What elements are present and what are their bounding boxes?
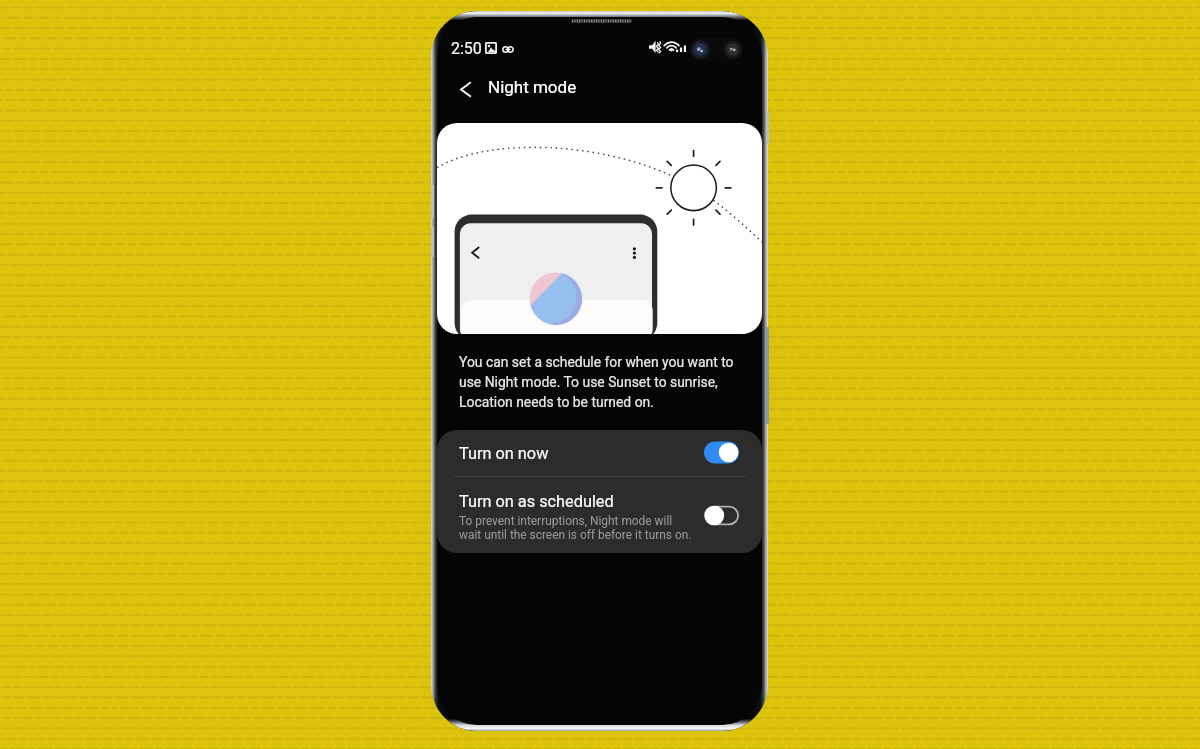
staticText: You can set a schedule for when you want… — [459, 354, 739, 410]
button[interactable]: Turn on — [704, 504, 739, 527]
staticText: Turn on as scheduled — [459, 492, 614, 511]
button[interactable]: Back — [447, 71, 484, 108]
staticText: Night mode — [488, 77, 577, 97]
button[interactable]: Turn off — [704, 441, 739, 464]
staticText: 2:50 — [451, 39, 482, 58]
staticText: To prevent interruptions, Night mode wil… — [459, 514, 692, 542]
button[interactable]: Turn on as scheduled — [437, 477, 762, 553]
button[interactable]: Turn on now — [437, 430, 762, 476]
staticText: Turn on now — [459, 444, 549, 463]
